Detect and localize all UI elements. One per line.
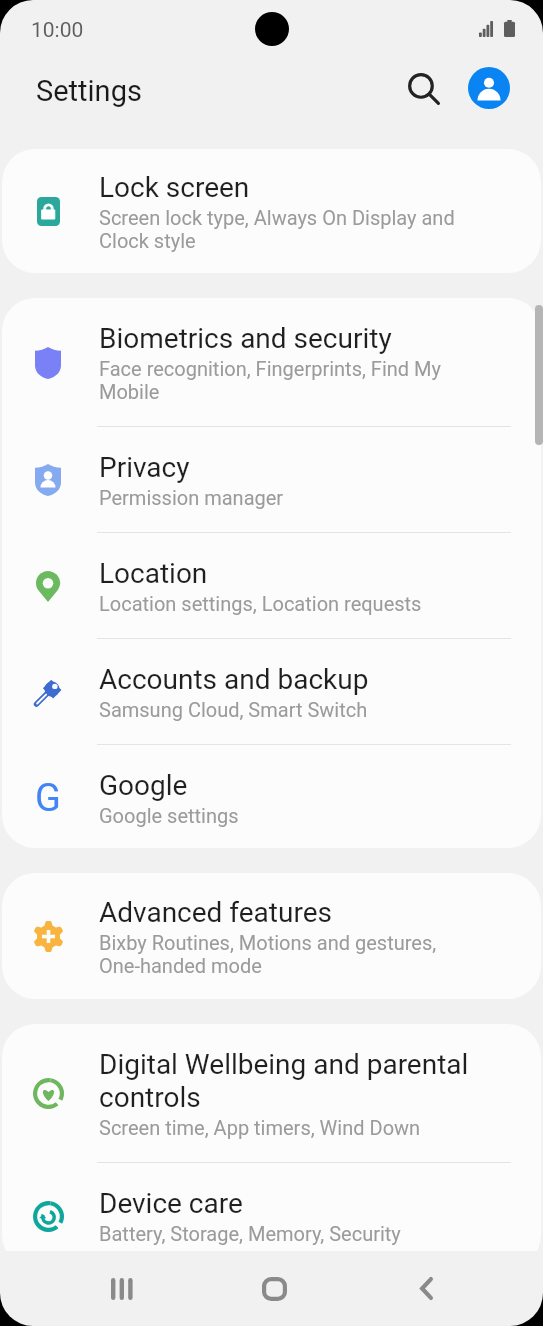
button[interactable]: Lock screen bbox=[2, 149, 541, 273]
staticText: Accounts and backup bbox=[99, 663, 369, 696]
button[interactable]: Privacy bbox=[2, 427, 541, 533]
staticText: Google bbox=[99, 769, 188, 802]
button[interactable]: Digital Wellbeing and parental controls bbox=[2, 1024, 541, 1163]
button[interactable]: Back bbox=[395, 1257, 458, 1320]
staticText: 10:00 bbox=[31, 18, 84, 43]
staticText: Privacy bbox=[99, 451, 190, 484]
button[interactable]: Device care bbox=[2, 1163, 541, 1251]
button[interactable]: G bbox=[2, 745, 541, 848]
staticText: Screen time, App timers, Wind Down bbox=[99, 1116, 421, 1139]
staticText: Device care bbox=[99, 1187, 243, 1220]
staticText: Biometrics and security bbox=[99, 322, 392, 355]
button[interactable]: Search bbox=[400, 65, 448, 113]
staticText: G bbox=[35, 776, 61, 821]
staticText: Digital Wellbeing and parental controls bbox=[99, 1048, 481, 1114]
staticText: Settings bbox=[36, 74, 142, 108]
staticText: Google settings bbox=[99, 804, 239, 827]
button[interactable]: Biometrics and security bbox=[2, 298, 541, 427]
button[interactable]: Home bbox=[243, 1257, 306, 1320]
button[interactable]: Advanced features bbox=[2, 873, 541, 999]
staticText: Battery, Storage, Memory, Security bbox=[99, 1222, 401, 1245]
button[interactable]: Location bbox=[2, 533, 541, 639]
staticText: Samsung Cloud, Smart Switch bbox=[99, 698, 368, 721]
staticText: Location bbox=[99, 557, 208, 590]
staticText: Advanced features bbox=[99, 896, 332, 929]
staticText: Permission manager bbox=[99, 486, 284, 509]
staticText: Face recognition, Fingerprints, Find My … bbox=[99, 357, 481, 403]
staticText: Bixby Routines, Motions and gestures, On… bbox=[99, 931, 481, 977]
staticText: Location settings, Location requests bbox=[99, 592, 422, 615]
staticText: Lock screen bbox=[99, 171, 250, 204]
button[interactable]: Account bbox=[468, 67, 510, 109]
button[interactable]: Recents bbox=[90, 1257, 153, 1320]
button[interactable]: Accounts and backup bbox=[2, 639, 541, 745]
staticText: Screen lock type, Always On Display and … bbox=[99, 206, 481, 252]
